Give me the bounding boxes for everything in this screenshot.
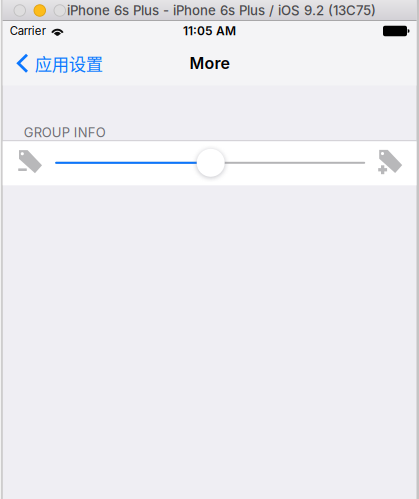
staticText: iPhone 6s Plus - iPhone 6s Plus / iOS 9.… xyxy=(67,2,376,18)
staticText: Carrier xyxy=(10,24,46,38)
staticText: 11:05 AM xyxy=(183,24,236,38)
button[interactable]: 应用设置 xyxy=(3,41,111,85)
staticText: 应用设置 xyxy=(35,51,103,76)
staticText: More xyxy=(190,54,230,73)
staticText: GROUP INFO xyxy=(24,125,106,140)
